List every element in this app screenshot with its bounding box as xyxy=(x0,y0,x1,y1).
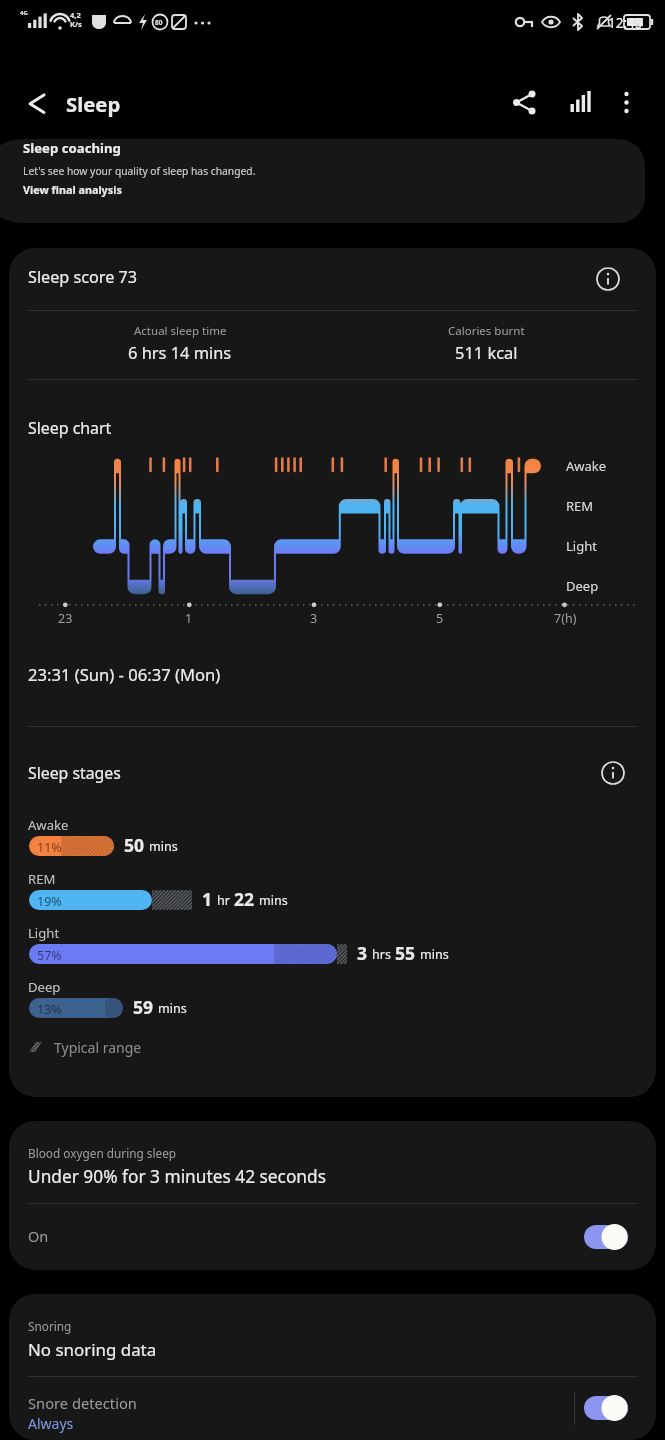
staticText: 13% xyxy=(37,1001,62,1018)
staticText: 11% xyxy=(37,839,62,856)
staticText: 23:31 (Sun) - 06:37 (Mon) xyxy=(28,663,221,686)
staticText: Sleep chart xyxy=(28,417,112,439)
staticText: 7(h) xyxy=(554,610,577,627)
staticText: mins xyxy=(158,1000,187,1017)
staticText: 3 xyxy=(357,941,368,965)
staticText: Light xyxy=(28,924,60,942)
staticText: 1 xyxy=(202,887,213,911)
staticText: 23 xyxy=(58,610,73,627)
staticText: Let's see how your quality of sleep has … xyxy=(23,164,256,178)
button[interactable]: Toggle xyxy=(584,1216,644,1258)
staticText: Snore detection xyxy=(28,1393,137,1413)
staticText: Sleep stages xyxy=(28,762,121,784)
staticText: mins xyxy=(259,892,288,909)
staticText: 5 xyxy=(436,610,444,627)
staticText: 55 xyxy=(395,941,416,965)
staticText: Sleep coaching xyxy=(23,139,121,157)
button[interactable]: Sleep coaching xyxy=(0,139,645,223)
staticText: Deep xyxy=(566,577,599,595)
staticText: hrs xyxy=(372,946,391,963)
staticText: Blood oxygen during sleep xyxy=(28,1145,177,1161)
staticText: Actual sleep time xyxy=(134,323,227,339)
staticText: Sleep xyxy=(66,90,121,118)
staticText: 6 hrs 14 mins xyxy=(128,341,232,363)
button[interactable]: Sleep score info xyxy=(586,257,630,301)
staticText: 57% xyxy=(37,947,62,964)
staticText: 50 xyxy=(124,833,145,857)
staticText: Typical range xyxy=(54,1038,142,1057)
staticText: 3 xyxy=(310,610,318,627)
staticText: hr xyxy=(217,892,230,909)
staticText: Light xyxy=(566,537,597,555)
staticText: On xyxy=(28,1226,49,1246)
staticText: No snoring data xyxy=(28,1338,157,1361)
staticText: REM xyxy=(28,870,56,888)
staticText: Under 90% for 3 minutes 42 seconds xyxy=(28,1165,326,1189)
staticText: Always xyxy=(28,1414,74,1433)
button[interactable]: Share xyxy=(503,81,546,124)
button[interactable]: Back xyxy=(15,82,59,126)
button[interactable]: On xyxy=(9,1204,656,1270)
staticText: REM xyxy=(566,497,594,515)
staticText: View final analysis xyxy=(23,182,122,197)
staticText: 80 xyxy=(155,18,163,27)
button[interactable]: More options xyxy=(605,81,648,124)
staticText: 4G xyxy=(20,9,28,17)
staticText: 59 xyxy=(133,995,154,1019)
staticText: Calories burnt xyxy=(448,323,525,339)
staticText: Deep xyxy=(28,978,61,996)
button[interactable]: Statistics xyxy=(559,81,602,124)
staticText: Awake xyxy=(28,816,69,834)
staticText: Snoring xyxy=(28,1318,72,1334)
staticText: 22 xyxy=(234,887,255,911)
staticText: mins xyxy=(420,946,449,963)
staticText: Awake xyxy=(566,457,607,475)
button[interactable]: Sleep stages info xyxy=(591,751,635,795)
button[interactable]: Snore detection xyxy=(9,1377,656,1440)
staticText: K/s xyxy=(70,19,82,29)
button[interactable]: Toggle xyxy=(584,1387,644,1429)
staticText: 19% xyxy=(37,893,62,910)
staticText: 12:45 xyxy=(608,14,643,32)
staticText: 1 xyxy=(185,610,193,627)
staticText: mins xyxy=(149,838,178,855)
staticText: 4,2 xyxy=(70,10,81,20)
staticText: 511 kcal xyxy=(455,341,518,363)
staticText: Sleep score 73 xyxy=(28,266,138,288)
